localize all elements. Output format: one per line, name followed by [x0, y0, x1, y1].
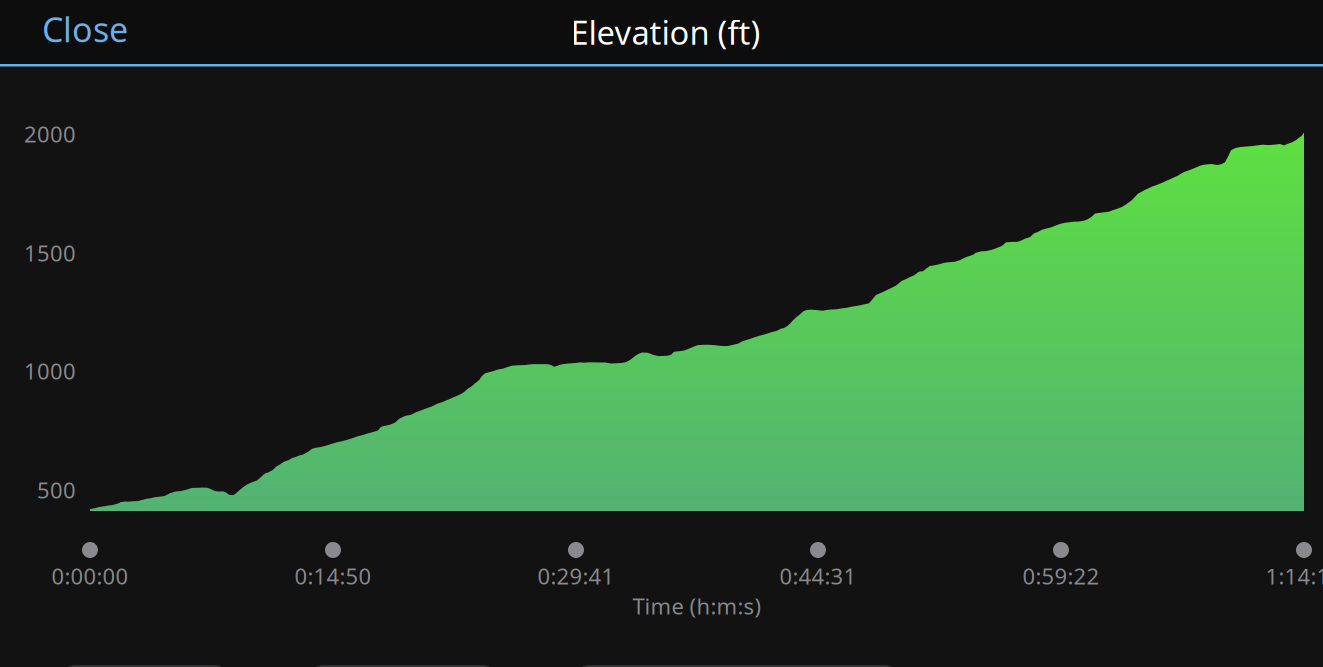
staticText: 0:59:22: [1022, 561, 1099, 591]
staticText: 500: [37, 475, 76, 505]
staticText: 2000: [24, 119, 76, 149]
staticText: 0:14:50: [294, 561, 371, 591]
staticText: Time (h:m:s): [632, 591, 761, 621]
staticText: 0:44:31: [779, 561, 856, 591]
button[interactable]: [306, 665, 500, 667]
staticText: Close: [42, 6, 128, 52]
button[interactable]: [572, 665, 902, 667]
button[interactable]: Close: [26, 0, 144, 60]
staticText: 1:14:12: [1265, 561, 1323, 591]
staticText: Elevation (ft): [570, 10, 760, 54]
staticText: 0:00:00: [51, 561, 128, 591]
staticText: 1500: [24, 238, 76, 268]
staticText: 1000: [24, 356, 76, 386]
button[interactable]: [58, 665, 232, 667]
staticText: 0:29:41: [537, 561, 614, 591]
